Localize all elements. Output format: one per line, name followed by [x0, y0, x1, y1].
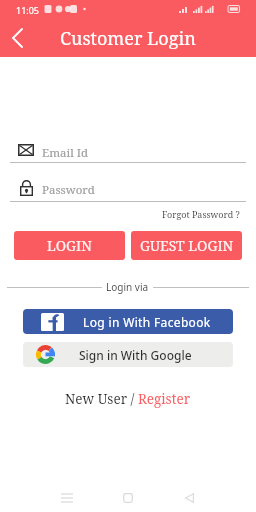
- button[interactable]: New User / Register: [65, 390, 191, 408]
- button[interactable]: Sign in With Google: [23, 342, 233, 367]
- staticText: Login via: [106, 280, 149, 294]
- button[interactable]: Home: [116, 486, 140, 510]
- staticText: Sign in With Google: [79, 347, 192, 363]
- staticText: Password: [42, 182, 95, 198]
- staticText: GUEST LOGIN: [140, 236, 234, 255]
- staticText: LOGIN: [47, 236, 92, 255]
- staticText: Email Id: [42, 145, 89, 161]
- button[interactable]: GUEST LOGIN: [131, 231, 242, 260]
- staticText: Log in With Facebook: [83, 314, 211, 330]
- staticText: 11:05: [16, 4, 40, 16]
- button[interactable]: Log in With Facebook: [23, 309, 233, 334]
- button[interactable]: Back: [177, 486, 201, 510]
- staticText: Forgot Password ?: [162, 208, 240, 220]
- button[interactable]: Recent apps: [55, 486, 79, 510]
- button[interactable]: LOGIN: [14, 231, 125, 260]
- staticText: Customer Login: [60, 26, 196, 51]
- button[interactable]: Back: [3, 24, 31, 52]
- button[interactable]: Forgot Password ?: [158, 206, 240, 222]
